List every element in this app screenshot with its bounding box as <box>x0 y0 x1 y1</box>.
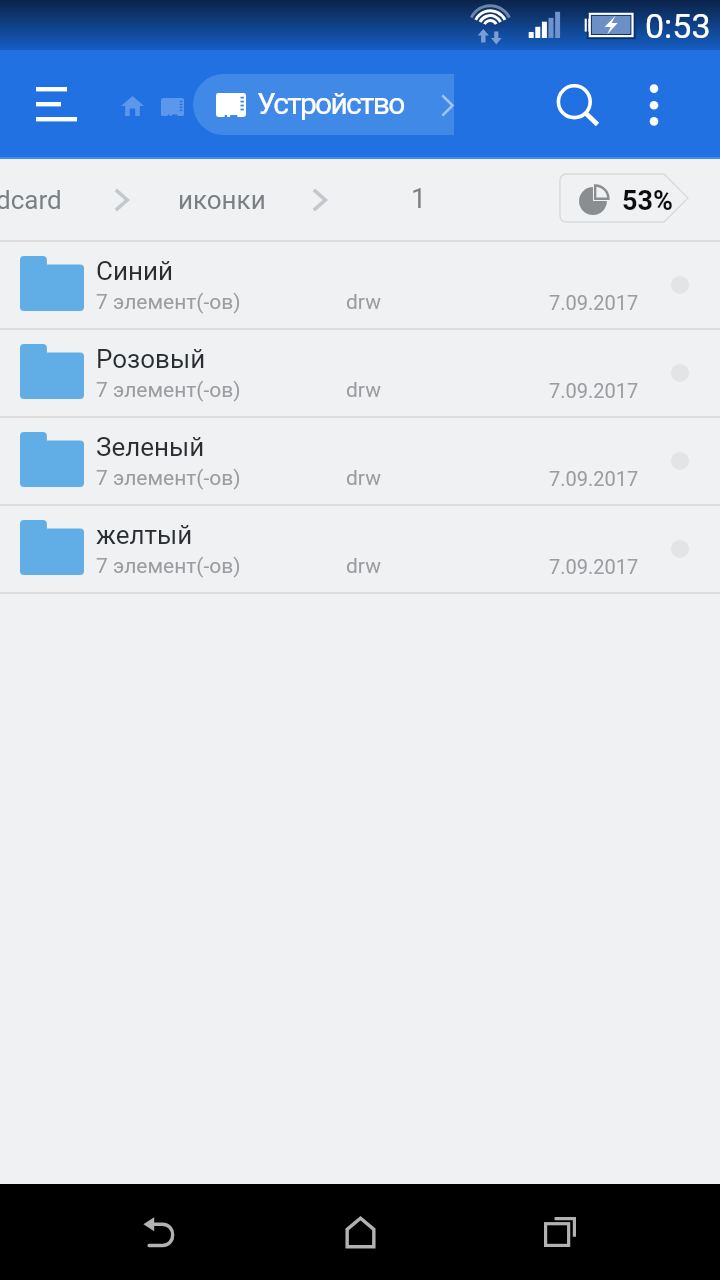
staticText: 7 элемент(-ов) <box>96 290 241 315</box>
button[interactable]: dcard <box>0 159 104 240</box>
staticText: drw <box>346 554 381 579</box>
staticText: dcard <box>0 185 62 215</box>
staticText: 7 элемент(-ов) <box>96 466 241 491</box>
button[interactable]: SD card <box>148 50 196 159</box>
staticText: Синий <box>96 256 173 286</box>
button[interactable]: More options <box>614 50 694 159</box>
staticText: 7.09.2017 <box>549 467 639 490</box>
button[interactable]: желтый <box>0 506 720 592</box>
button[interactable]: Устройство <box>193 74 493 135</box>
staticText: 0:53 <box>645 6 711 46</box>
staticText: 1 <box>411 183 427 215</box>
button[interactable]: Зеленый <box>0 418 720 504</box>
staticText: 7 элемент(-ов) <box>96 554 241 579</box>
staticText: 7 элемент(-ов) <box>96 378 241 403</box>
button[interactable]: Storage usage 53 percent <box>560 174 688 222</box>
staticText: drw <box>346 466 381 491</box>
button[interactable]: Back <box>79 1184 239 1280</box>
button[interactable]: Recent apps <box>480 1184 640 1280</box>
button[interactable]: иконки <box>160 159 282 240</box>
staticText: желтый <box>96 520 193 550</box>
staticText: 7.09.2017 <box>549 555 639 578</box>
button[interactable]: Розовый <box>0 330 720 416</box>
button[interactable]: 1 <box>382 159 448 240</box>
staticText: Зеленый <box>96 432 205 462</box>
button[interactable]: Home folder <box>108 50 156 159</box>
button[interactable]: Search <box>533 50 621 159</box>
staticText: 7.09.2017 <box>549 291 639 314</box>
staticText: 7.09.2017 <box>549 379 639 402</box>
staticText: Розовый <box>96 344 206 374</box>
staticText: 53% <box>622 185 673 217</box>
button[interactable]: Navigation menu <box>0 50 112 159</box>
staticText: drw <box>346 290 381 315</box>
staticText: drw <box>346 378 381 403</box>
button[interactable]: Home <box>280 1184 440 1280</box>
button[interactable]: Синий <box>0 242 720 328</box>
staticText: иконки <box>178 185 266 215</box>
staticText: Устройство <box>257 86 404 121</box>
